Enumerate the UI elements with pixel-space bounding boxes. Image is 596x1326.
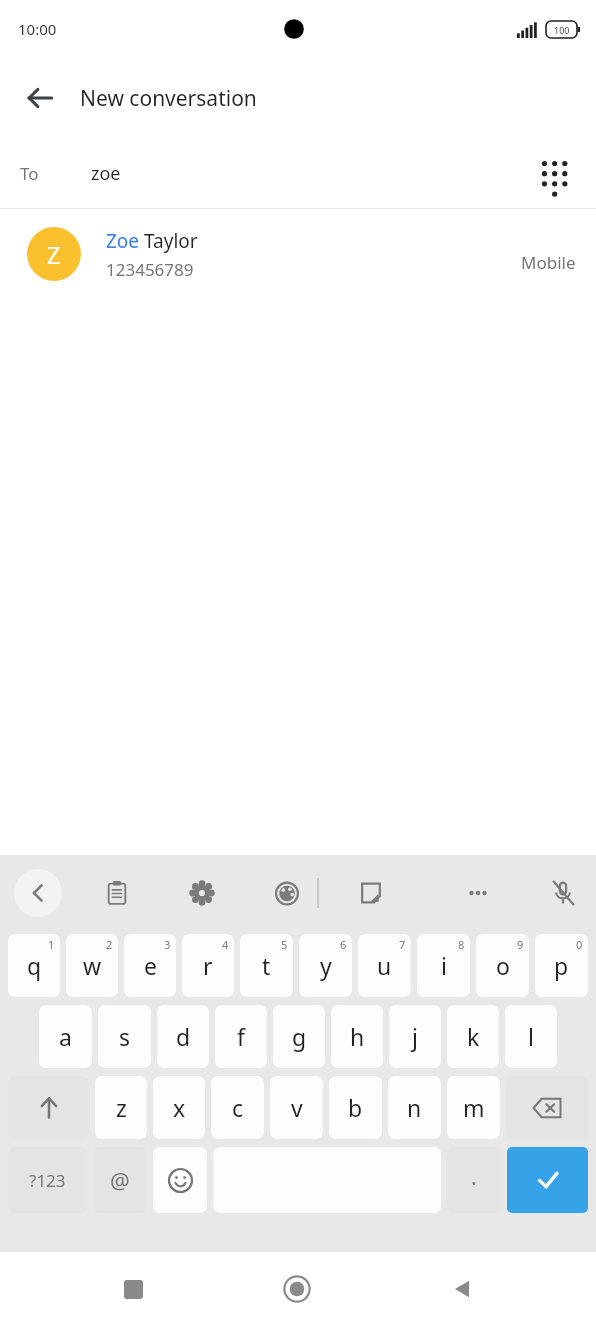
button[interactable]: Back [14,72,66,124]
staticText: w [83,950,102,981]
button[interactable]: g [273,1005,325,1068]
button[interactable]: Settings [178,869,226,917]
staticText: p [554,950,569,981]
staticText: Mobile [521,251,576,274]
staticText: q [27,950,42,981]
staticText: 100 [554,24,570,36]
button[interactable]: Collapse toolbar [14,869,62,917]
button[interactable]: t [240,934,293,997]
button[interactable]: f [215,1005,267,1068]
staticText: 5 [281,937,288,952]
staticText: ?123 [29,1169,66,1192]
button[interactable]: Shift [8,1076,89,1139]
button[interactable]: s [98,1005,151,1068]
staticText: 2 [106,937,113,952]
staticText: r [203,950,213,981]
staticText: 4 [222,937,229,952]
button[interactable]: e [124,934,176,997]
button[interactable]: j [389,1005,441,1068]
staticText: Z [47,239,61,270]
button[interactable]: x [153,1076,205,1139]
staticText: 0 [576,937,583,952]
button[interactable]: u [358,934,411,997]
staticText: 8 [458,937,465,952]
staticText: h [350,1021,365,1052]
button[interactable]: y [299,934,352,997]
button[interactable]: r [182,934,234,997]
button[interactable]: b [329,1076,382,1139]
staticText: . [471,1161,477,1191]
button[interactable]: Home [266,1258,328,1320]
button[interactable]: i [417,934,470,997]
button[interactable]: Voice input off [539,869,587,917]
button[interactable]: w [66,934,118,997]
button[interactable]: Enter [507,1147,588,1213]
button[interactable]: Backspace [506,1076,588,1139]
staticText: l [528,1021,534,1052]
button[interactable]: Theme [263,869,311,917]
staticText: j [412,1021,418,1052]
button[interactable]: Z [0,209,596,299]
staticText: z [116,1092,127,1123]
staticText: @ [110,1165,130,1195]
staticText: i [441,950,447,981]
button[interactable]: n [388,1076,441,1139]
staticText: g [292,1021,307,1052]
staticText: m [463,1092,485,1123]
staticText: 123456789 [106,258,194,281]
staticText: 9 [517,937,524,952]
staticText: a [59,1021,72,1052]
button[interactable]: Clipboard [93,869,141,917]
button[interactable]: More options [454,869,502,917]
button[interactable]: To [0,138,596,208]
staticText: k [467,1021,480,1052]
button[interactable]: Back [431,1258,493,1320]
staticText: New conversation [80,84,257,113]
staticText: t [262,950,271,981]
button[interactable]: Emoji [153,1147,207,1213]
staticText: d [176,1021,191,1052]
button[interactable]: k [447,1005,499,1068]
staticText: x [173,1092,186,1123]
staticText: n [407,1092,422,1123]
button[interactable]: l [505,1005,557,1068]
button[interactable]: m [447,1076,500,1139]
button[interactable]: c [211,1076,264,1139]
staticText: o [496,950,510,981]
button[interactable]: @ [93,1147,147,1213]
staticText: 1 [48,937,55,952]
staticText: 6 [340,937,347,952]
staticText: 10:00 [18,19,57,39]
staticText: y [320,950,332,981]
staticText: s [119,1021,131,1052]
button[interactable]: q [8,934,60,997]
button[interactable]: Handwriting [347,869,395,917]
button[interactable]: z [95,1076,147,1139]
button[interactable]: . [447,1147,501,1213]
staticText: u [377,950,392,981]
staticText: Zoe Taylor [106,228,198,254]
button[interactable]: d [157,1005,209,1068]
staticText: 3 [164,937,171,952]
button[interactable]: ?123 [8,1147,87,1213]
staticText: v [291,1092,303,1123]
staticText: To [20,162,39,185]
staticText: f [237,1021,245,1052]
staticText: c [232,1092,244,1123]
button[interactable]: Dialpad [528,147,580,199]
button[interactable]: a [39,1005,92,1068]
staticText: zoe [91,161,121,186]
staticText: e [144,950,157,981]
button[interactable]: v [270,1076,323,1139]
button[interactable]: o [476,934,529,997]
staticText: b [348,1092,363,1123]
button[interactable]: h [331,1005,383,1068]
button[interactable]: p [535,934,588,997]
staticText: 7 [399,937,406,952]
button[interactable]: Recents [102,1258,164,1320]
